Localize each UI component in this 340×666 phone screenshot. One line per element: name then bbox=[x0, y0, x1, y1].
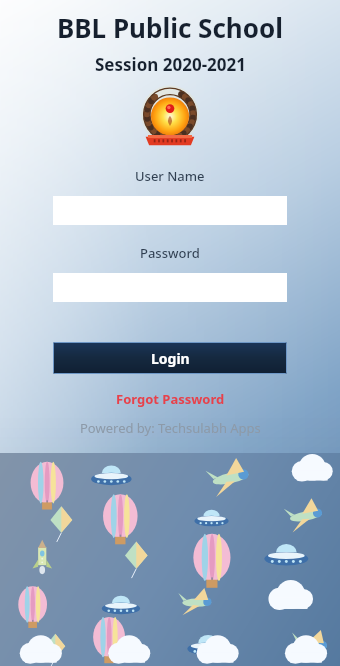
other: School logo bbox=[141, 87, 199, 147]
staticText: Session 2020-2021 bbox=[95, 53, 246, 76]
staticText: Login bbox=[151, 349, 190, 368]
staticText: BBL Public School bbox=[57, 10, 283, 45]
button[interactable]: Forgot Password bbox=[110, 388, 231, 410]
staticText: Password bbox=[140, 244, 200, 262]
staticText: User Name bbox=[135, 167, 205, 185]
button[interactable]: Login bbox=[53, 342, 287, 374]
staticText: Forgot Password bbox=[116, 390, 225, 408]
staticText: Powered by: Techsulabh Apps bbox=[80, 419, 261, 437]
